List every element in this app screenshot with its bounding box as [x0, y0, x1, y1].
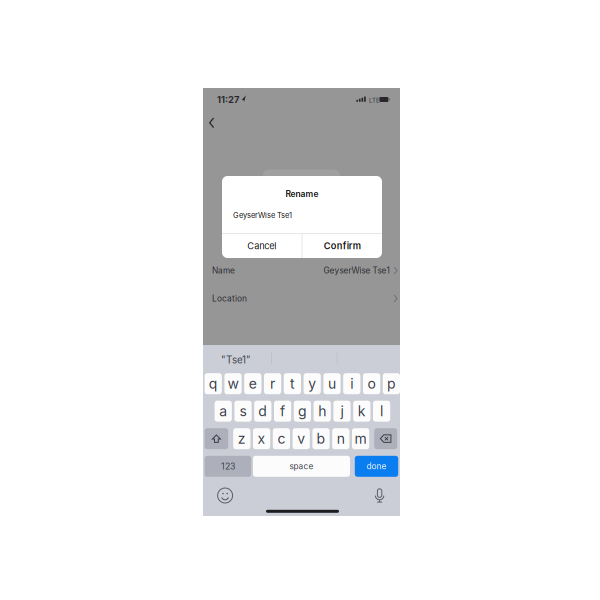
staticText: j	[340, 403, 343, 420]
staticText: Location	[212, 293, 247, 304]
button[interactable]: a	[215, 401, 232, 422]
button[interactable]: y	[304, 373, 321, 394]
button[interactable]: l	[373, 401, 390, 422]
staticText: t	[290, 375, 295, 392]
staticText: q	[209, 375, 218, 392]
staticText: Name	[212, 265, 235, 275]
staticText: w	[227, 375, 238, 392]
button[interactable]: o	[363, 373, 380, 394]
button[interactable]: n	[332, 428, 349, 449]
staticText: 123	[221, 461, 235, 472]
staticText: k	[358, 403, 366, 420]
staticText: GeyserWise Tse1	[233, 211, 292, 220]
staticText: z	[238, 430, 246, 447]
staticText: h	[318, 403, 326, 420]
button[interactable]: j	[333, 401, 351, 422]
button[interactable]: Back	[205, 114, 218, 132]
button[interactable]: u	[323, 373, 341, 394]
button[interactable]: s	[234, 401, 252, 422]
button[interactable]: r	[264, 373, 281, 394]
staticText: "Tse1"	[221, 354, 251, 366]
button[interactable]: Name	[203, 261, 400, 279]
button[interactable]: Delete	[374, 428, 397, 449]
button[interactable]: Confirm	[302, 234, 382, 258]
staticText: space	[289, 461, 313, 471]
staticText: p	[387, 375, 396, 392]
button[interactable]: 123	[205, 456, 251, 477]
button[interactable]: c	[273, 428, 290, 449]
button[interactable]: Shift	[205, 428, 228, 449]
staticText: e	[249, 375, 257, 392]
staticText: r	[270, 375, 275, 392]
button[interactable]: k	[353, 401, 370, 422]
staticText: u	[328, 375, 336, 392]
staticText: m	[355, 430, 367, 447]
button[interactable]: h	[314, 401, 331, 422]
staticText: 11:27	[217, 94, 239, 105]
button[interactable]: g	[294, 401, 311, 422]
staticText: d	[258, 403, 267, 420]
staticText: x	[258, 430, 266, 447]
staticText: Rename	[285, 189, 318, 199]
button[interactable]: space	[253, 456, 350, 477]
staticText: LTE	[369, 97, 380, 104]
button[interactable]: i	[343, 373, 360, 394]
staticText: s	[239, 403, 246, 420]
button[interactable]: q	[205, 373, 222, 394]
button[interactable]: f	[274, 401, 291, 422]
staticText: g	[298, 403, 307, 420]
button[interactable]: Location	[203, 289, 400, 307]
button[interactable]: m	[352, 428, 369, 449]
staticText: i	[350, 375, 353, 392]
staticText: a	[219, 403, 227, 420]
button[interactable]: x	[253, 428, 270, 449]
button[interactable]: v	[293, 428, 310, 449]
button[interactable]: t	[284, 373, 301, 394]
button[interactable]: b	[312, 428, 330, 449]
staticText: Cancel	[247, 240, 276, 251]
button[interactable]: e	[244, 373, 261, 394]
button[interactable]: z	[233, 428, 250, 449]
button[interactable]: Cancel	[222, 234, 302, 258]
staticText: b	[316, 430, 325, 447]
staticText: GeyserWise Tse1	[323, 265, 389, 275]
staticText: c	[277, 430, 285, 447]
button[interactable]: Emoji keyboard	[218, 488, 233, 503]
button[interactable]: done	[355, 456, 398, 477]
staticText: done	[366, 461, 386, 471]
staticText: y	[308, 375, 316, 392]
staticText: n	[337, 430, 345, 447]
staticText: o	[368, 375, 376, 392]
button[interactable]: Dictation	[375, 485, 384, 500]
button[interactable]: w	[224, 373, 242, 394]
staticText: f	[280, 403, 285, 420]
button[interactable]: d	[254, 401, 271, 422]
button[interactable]: "Tse1"	[203, 349, 269, 371]
button[interactable]: p	[383, 373, 400, 394]
staticText: l	[380, 403, 383, 420]
staticText: Confirm	[324, 240, 361, 251]
staticText: v	[297, 430, 305, 447]
